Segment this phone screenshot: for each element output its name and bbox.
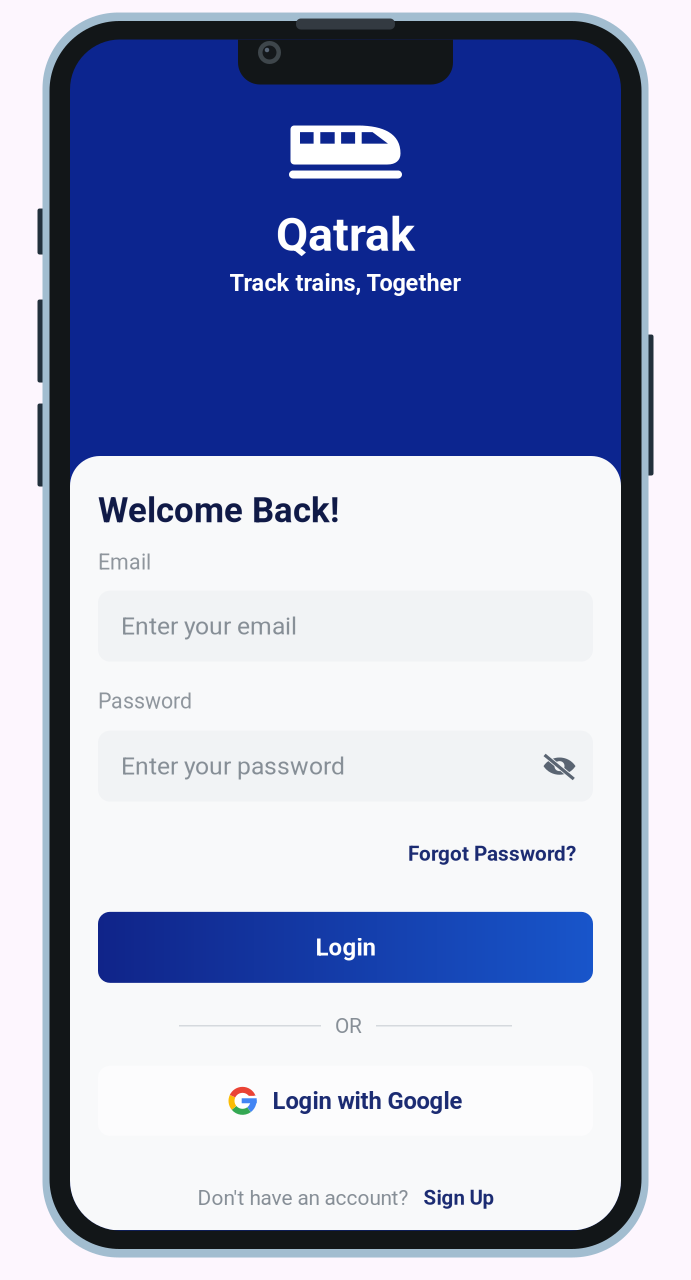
staticText: Enter your password: [121, 752, 345, 781]
button[interactable]: Enter your email: [98, 591, 593, 662]
staticText: Login: [315, 933, 375, 961]
staticText: Email: [98, 550, 151, 575]
staticText: Don't have an account?: [197, 1186, 408, 1210]
button[interactable]: Forgot Password?: [408, 842, 576, 866]
staticText: Welcome Back!: [98, 490, 339, 531]
staticText: Password: [98, 689, 192, 714]
staticText: Qatrak: [276, 207, 415, 262]
staticText: Sign Up: [423, 1186, 493, 1210]
staticText: Track trains, Together: [229, 269, 461, 297]
button[interactable]: Enter your password: [98, 731, 593, 802]
staticText: Enter your email: [121, 612, 297, 641]
button[interactable]: Login: [98, 912, 593, 983]
button[interactable]: Login with Google: [98, 1066, 593, 1136]
staticText: Forgot Password?: [408, 842, 576, 866]
button[interactable]: Sign Up: [423, 1186, 493, 1210]
staticText: Login with Google: [272, 1087, 462, 1115]
staticText: OR: [335, 1014, 362, 1038]
